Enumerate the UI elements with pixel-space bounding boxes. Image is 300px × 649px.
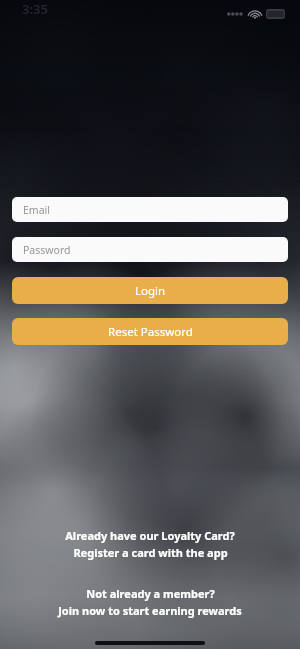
staticText: Not already a member? bbox=[86, 586, 215, 601]
button[interactable]: Email bbox=[12, 197, 288, 222]
staticText: Login bbox=[135, 283, 166, 299]
staticText: Password bbox=[23, 243, 71, 257]
staticText: 3:35 bbox=[22, 0, 48, 18]
button[interactable]: Register a loyalty card with the app bbox=[0, 526, 300, 562]
button[interactable]: Password bbox=[12, 237, 288, 262]
button[interactable]: Join now to start earning rewards bbox=[0, 584, 300, 620]
staticText: Join now to start earning rewards bbox=[58, 603, 242, 618]
staticText: Email bbox=[23, 203, 50, 217]
staticText: Reset Password bbox=[108, 324, 193, 340]
button[interactable]: Reset Password bbox=[12, 318, 288, 345]
button[interactable]: Login bbox=[12, 277, 288, 304]
staticText: Register a card with the app bbox=[73, 545, 228, 560]
staticText: Already have our Loyalty Card? bbox=[65, 528, 235, 543]
